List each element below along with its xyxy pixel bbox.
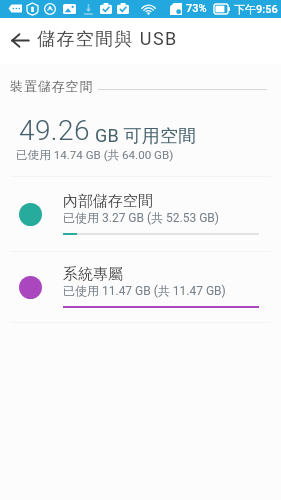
staticText: 內部儲存空間: [63, 192, 153, 211]
staticText: 裝置儲存空間: [10, 78, 94, 94]
staticText: 下午9:56: [234, 2, 278, 16]
staticText: 已使用 3.27 GB (共 52.53 GB): [63, 210, 220, 225]
button[interactable]: Back: [5, 25, 35, 55]
staticText: 73%: [186, 2, 207, 15]
staticText: 儲存空間與 USB: [37, 28, 178, 51]
staticText: 已使用 11.47 GB (共 11.47 GB): [63, 283, 226, 298]
staticText: GB 可用空間: [95, 125, 197, 148]
button[interactable]: 系統專屬: [0, 265, 281, 335]
button[interactable]: 內部儲存空間: [0, 192, 281, 262]
staticText: 49.26: [19, 114, 90, 147]
staticText: 已使用 14.74 GB (共 64.00 GB): [16, 148, 174, 163]
staticText: 系統專屬: [63, 265, 123, 284]
